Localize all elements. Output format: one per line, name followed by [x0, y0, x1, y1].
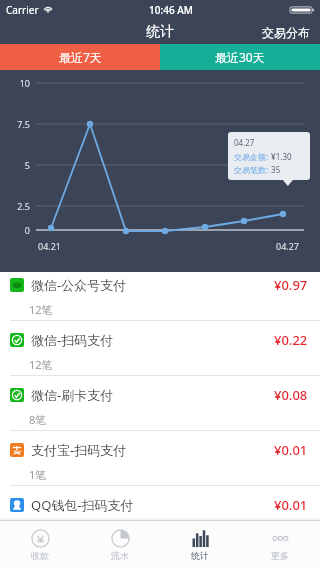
staticText: QQ钱包-扫码支付 [31, 496, 134, 514]
button[interactable]: 支付宝-扫码支付 [0, 437, 320, 492]
staticText: 微信-公众号支付 [31, 276, 127, 294]
staticText: 12笔 [29, 302, 53, 317]
button[interactable]: 微信-公众号支付 [0, 272, 320, 327]
button[interactable]: 最近30天 [160, 44, 320, 70]
staticText: 微信-刷卡支付 [31, 386, 114, 404]
staticText: 10 [19, 77, 30, 89]
staticText: 0 [24, 224, 30, 236]
button[interactable]: 微信-刷卡支付 [0, 382, 320, 437]
staticText: 更多 [271, 550, 289, 561]
staticText: ¥0.97 [274, 276, 308, 294]
button[interactable]: 更多 [240, 521, 320, 568]
staticText: ¥0.01 [274, 496, 308, 514]
staticText: ¥0.08 [274, 386, 308, 404]
staticText: 04.27 [276, 240, 300, 252]
staticText: 统计 [191, 550, 209, 561]
button[interactable]: QQ钱包-扫码支付 [0, 492, 320, 518]
staticText: 7.5 [17, 118, 30, 130]
staticText: 流水 [111, 550, 129, 561]
staticText: 收款 [31, 550, 49, 561]
staticText: 10:46 AM [149, 3, 193, 17]
button[interactable]: 统计 [160, 521, 240, 568]
staticText: 最近7天 [59, 49, 102, 65]
staticText: 04.27 [234, 137, 255, 148]
staticText: Carrier [6, 3, 39, 17]
staticText: ¥0.22 [274, 331, 308, 349]
button[interactable]: 流水 [80, 521, 160, 568]
button[interactable]: 交易分布 [252, 20, 320, 44]
staticText: 5 [24, 159, 30, 171]
staticText: ¥0.01 [274, 441, 308, 459]
staticText: 35 [269, 164, 281, 175]
staticText: 统计 [146, 23, 174, 41]
staticText: 04.21 [38, 240, 62, 252]
button[interactable]: 收款 [0, 521, 80, 568]
button[interactable]: 微信-扫码支付 [0, 327, 320, 382]
staticText: ¥1.30 [269, 151, 292, 162]
staticText: 微信-扫码支付 [31, 331, 114, 349]
staticText: 最近30天 [215, 49, 265, 65]
staticText: 1笔 [29, 467, 47, 482]
staticText: 12笔 [29, 357, 53, 372]
staticText: 交易金额: [234, 151, 269, 162]
staticText: 2.5 [17, 200, 30, 212]
staticText: 支付宝-扫码支付 [31, 441, 127, 459]
button[interactable]: 最近7天 [0, 44, 160, 70]
staticText: 交易分布 [262, 25, 310, 40]
staticText: 8笔 [29, 412, 47, 427]
staticText: 交易笔数: [234, 164, 269, 175]
